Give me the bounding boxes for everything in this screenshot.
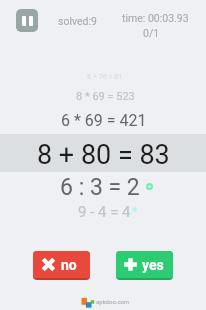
staticText: 0/1: [143, 27, 160, 39]
staticText: apkdoo.com: [96, 298, 130, 305]
button[interactable]: no: [33, 251, 90, 280]
button[interactable]: Pause: [16, 9, 38, 32]
staticText: 9 - 4 = 4: [78, 203, 131, 221]
staticText: 6 * 69 = 421: [61, 111, 147, 130]
button[interactable]: yes: [116, 251, 173, 280]
staticText: 6 : 3 = 2: [60, 174, 140, 201]
staticText: 8 * 69 = 523: [76, 90, 135, 103]
staticText: 8 + 80 = 83: [37, 139, 170, 171]
staticText: yes: [142, 257, 164, 273]
staticText: solved:9: [58, 15, 97, 27]
staticText: 8 + 76 = 81: [87, 72, 123, 80]
staticText: no: [61, 257, 77, 273]
staticText: time: 00:03.93: [122, 12, 189, 24]
